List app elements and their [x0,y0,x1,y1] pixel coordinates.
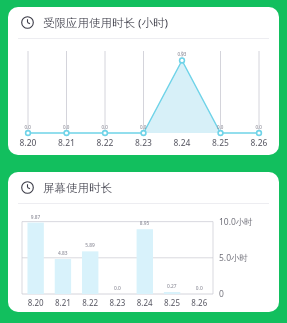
other: Clock [21,16,34,29]
other: Clock [21,181,34,194]
button[interactable]: Clock [8,7,279,38]
button[interactable]: Clock [8,7,279,155]
button[interactable]: Clock [8,172,279,312]
staticText: 屏幕使用时长 [43,181,112,195]
staticText: 受限应用使用时长 (小时) [43,15,169,31]
button[interactable]: Clock [8,172,279,203]
